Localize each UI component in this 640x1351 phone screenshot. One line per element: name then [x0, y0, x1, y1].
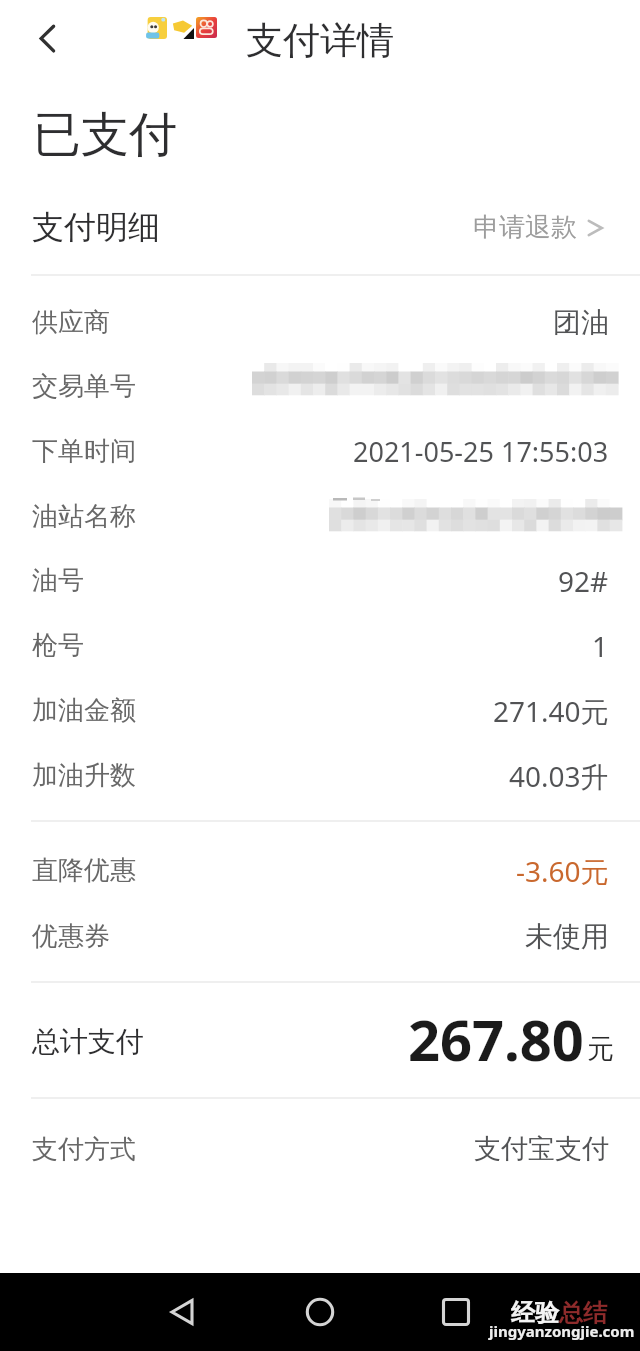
staticText: 供应商 — [32, 306, 110, 339]
button[interactable]: Home — [291, 1283, 349, 1341]
button[interactable] — [0, 678, 640, 742]
staticText: 2021-05-25 17:55:03 — [353, 433, 609, 470]
staticText: 92# — [558, 562, 609, 600]
staticText: 直降优惠 — [32, 854, 136, 887]
staticText: 油站名称 — [32, 500, 136, 533]
button[interactable] — [0, 484, 640, 548]
staticText: 加油升数 — [32, 759, 136, 792]
staticText: 交易单号 — [32, 370, 136, 403]
staticText: 元 — [587, 1032, 614, 1066]
staticText: 总计支付 — [32, 1024, 144, 1059]
staticText: 271.40元 — [493, 692, 609, 730]
staticText: 经验 — [511, 1298, 559, 1328]
staticText: 未使用 — [525, 919, 609, 954]
button[interactable] — [0, 838, 640, 902]
button[interactable] — [0, 548, 640, 612]
staticText: 申请退款 — [473, 211, 577, 244]
button[interactable]: Back — [153, 1283, 211, 1341]
button[interactable] — [0, 419, 640, 483]
staticText: 已支付 — [33, 105, 177, 165]
button[interactable]: 申请退款 — [0, 203, 603, 251]
button[interactable] — [0, 354, 640, 418]
staticText: 枪号 — [32, 629, 84, 662]
staticText: 40.03升 — [509, 757, 609, 795]
button[interactable]: Recents — [427, 1283, 485, 1341]
button[interactable] — [0, 290, 640, 354]
staticText: -3.60元 — [516, 852, 609, 890]
staticText: 1 — [592, 627, 609, 665]
staticText: 下单时间 — [32, 435, 136, 468]
staticText: 加油金额 — [32, 694, 136, 727]
staticText: 267.80 — [408, 1001, 584, 1069]
staticText: jingyanzongjie.com — [489, 1321, 635, 1341]
button[interactable] — [0, 904, 640, 968]
staticText: 支付方式 — [32, 1133, 136, 1166]
staticText: 总结 — [559, 1298, 607, 1328]
staticText: 支付详情 — [246, 17, 394, 64]
button[interactable] — [0, 743, 640, 807]
staticText: 支付宝支付 — [474, 1132, 609, 1166]
button[interactable] — [0, 613, 640, 677]
staticText: 支付明细 — [32, 207, 160, 247]
staticText: 团油 — [553, 305, 609, 340]
button[interactable] — [0, 1001, 640, 1081]
button[interactable]: Back — [18, 14, 70, 66]
button[interactable] — [0, 1117, 640, 1181]
staticText: 优惠券 — [32, 920, 110, 953]
staticText: 油号 — [32, 564, 84, 597]
